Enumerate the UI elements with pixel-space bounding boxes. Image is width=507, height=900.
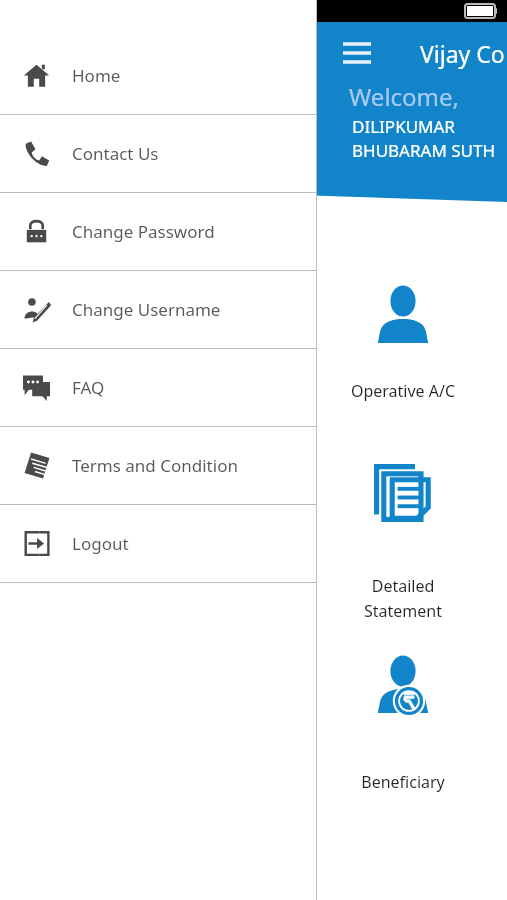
button[interactable]: Home — [0, 37, 317, 114]
staticText: Home — [72, 64, 121, 87]
staticText: Change Username — [72, 298, 221, 321]
button[interactable]: Logout — [0, 505, 317, 582]
staticText: Beneficiary — [327, 771, 479, 793]
button[interactable]: Change Username — [0, 271, 317, 348]
staticText: Welcome, — [349, 80, 460, 113]
button[interactable]: FAQ — [0, 349, 317, 426]
staticText: DILIPKUMAR — [352, 115, 455, 138]
staticText: BHUBARAM SUTH — [352, 139, 496, 162]
button[interactable]: Open navigation drawer — [334, 30, 380, 76]
staticText: Logout — [72, 532, 129, 555]
staticText: Terms and Condition — [72, 454, 238, 477]
staticText: Operative A/C — [327, 380, 479, 402]
staticText: Detailed Statement — [327, 575, 479, 621]
button[interactable]: Change Password — [0, 193, 317, 270]
staticText: Vijay Co — [420, 38, 505, 69]
staticText: FAQ — [72, 376, 105, 399]
button[interactable]: Terms and Condition — [0, 427, 317, 504]
staticText: Change Password — [72, 220, 215, 243]
button[interactable] — [337, 451, 469, 581]
staticText: Contact Us — [72, 142, 159, 165]
button[interactable] — [337, 641, 469, 771]
button[interactable]: Contact Us — [0, 115, 317, 192]
button[interactable] — [337, 271, 469, 401]
